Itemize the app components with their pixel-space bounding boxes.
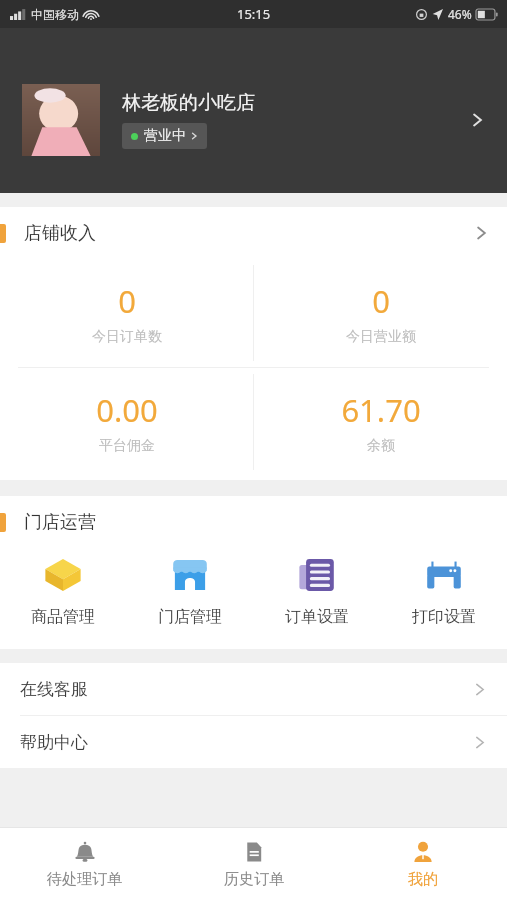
button[interactable]: 营业中: [122, 123, 207, 149]
staticText: 余额: [367, 437, 395, 455]
button[interactable]: 历史订单: [169, 828, 338, 900]
button[interactable]: 待处理订单: [0, 828, 169, 900]
staticText: 店铺收入: [24, 222, 96, 245]
other: 我的: [411, 840, 435, 864]
button[interactable]: 打印设置: [380, 548, 507, 631]
staticText: 0: [372, 280, 390, 322]
staticText: 林老板的小吃店: [122, 91, 255, 115]
button[interactable]: 商品管理: [0, 548, 126, 631]
staticText: 今日订单数: [92, 328, 162, 346]
staticText: 我的: [408, 870, 438, 889]
staticText: 在线客服: [20, 679, 88, 700]
staticText: 0.00: [96, 389, 158, 431]
button[interactable]: 0: [0, 259, 253, 367]
staticText: 中国移动: [31, 7, 79, 22]
button[interactable]: 我的: [338, 828, 507, 900]
button[interactable]: 订单设置: [253, 548, 380, 631]
button[interactable]: 在线客服: [0, 663, 507, 715]
button[interactable]: 0: [254, 259, 507, 367]
button[interactable]: 店铺收入: [0, 207, 507, 259]
button[interactable]: 0.00: [0, 368, 253, 476]
button[interactable]: 61.70: [254, 368, 507, 476]
button[interactable]: 门店管理: [126, 548, 253, 631]
staticText: 15:15: [237, 5, 271, 23]
staticText: 门店运营: [24, 511, 96, 534]
staticText: 46%: [448, 6, 472, 22]
other: 历史订单: [242, 840, 266, 864]
staticText: 0: [118, 280, 136, 322]
staticText: 今日营业额: [346, 328, 416, 346]
other: 待处理订单: [73, 840, 97, 864]
staticText: 订单设置: [285, 607, 349, 627]
staticText: 待处理订单: [47, 870, 122, 889]
button[interactable]: 帮助中心: [0, 716, 507, 768]
staticText: 商品管理: [31, 607, 95, 627]
staticText: 61.70: [341, 389, 421, 431]
staticText: 营业中: [144, 127, 186, 145]
staticText: 历史订单: [224, 870, 284, 889]
staticText: 门店管理: [158, 607, 222, 627]
staticText: 帮助中心: [20, 732, 88, 753]
staticText: 平台佣金: [99, 437, 155, 455]
staticText: 打印设置: [412, 607, 476, 627]
button[interactable]: 林老板的小吃店: [0, 28, 507, 193]
